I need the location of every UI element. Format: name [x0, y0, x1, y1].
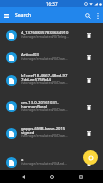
button[interactable]: b1ceef18-4667-48ed-97 7dd-ee575fb44 — [0, 67, 103, 93]
staticText: /storage/emulated/0/Dow… — [21, 133, 68, 138]
staticText: cm-13.0-20161031- harmonfbeal — [21, 100, 59, 109]
button[interactable]: Back — [18, 171, 29, 182]
button[interactable]: Delete — [83, 51, 95, 63]
staticText: a — [21, 157, 24, 163]
staticText: /storage/emulated/0/Dow… — [21, 56, 68, 61]
staticText: gapps-6MB-base-2015 signed — [21, 126, 66, 135]
button[interactable]: a — [0, 146, 103, 170]
staticText: /storage/emulated/0/Dow… — [21, 80, 68, 85]
button[interactable]: Delete — [83, 74, 95, 86]
button[interactable]: gapps-6MB-base-2015 signed — [0, 120, 103, 146]
staticText: 16:37 — [46, 1, 58, 7]
button[interactable]: Delete — [83, 29, 95, 41]
button[interactable]: Delete — [83, 101, 95, 113]
staticText: 4_137608357833634910 — [21, 30, 69, 36]
staticText: /storage/emulated/0/Teleg… — [21, 34, 70, 39]
staticText: Search — [15, 12, 32, 19]
button[interactable]: Recent apps — [75, 171, 86, 182]
button[interactable]: Home — [46, 171, 57, 182]
button[interactable]: 4_137608357833634910 — [0, 23, 103, 47]
button[interactable]: Navigation menu — [0, 9, 13, 22]
button[interactable]: Add — [83, 150, 98, 165]
button[interactable]: Search — [82, 10, 93, 21]
button[interactable]: More options — [93, 11, 103, 21]
button[interactable]: cm-13.0-20161031- harmonfbeal — [0, 93, 103, 120]
button[interactable]: Delete — [83, 127, 95, 139]
staticText: /storage/emulated/0/And… — [21, 161, 67, 166]
staticText: /storage/emulated/0/Dow… — [21, 107, 68, 112]
staticText: Articol03 — [21, 52, 39, 58]
button[interactable]: Articol03 — [0, 47, 103, 67]
staticText: b1ceef18-4667-48ed-97 7dd-ee575fb44 — [21, 73, 68, 82]
button[interactable]: Delete — [83, 157, 95, 169]
